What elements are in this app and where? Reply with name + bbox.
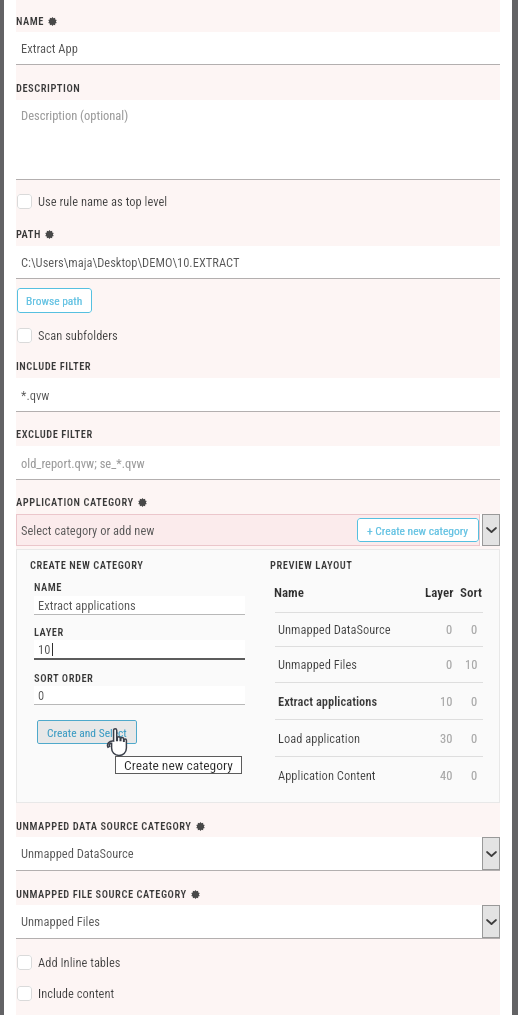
staticText: Extract applications: [278, 694, 423, 709]
staticText: 0: [446, 657, 453, 672]
staticText: 0: [471, 694, 478, 709]
staticText: Unmapped DataSource: [21, 846, 134, 861]
staticText: PATH: [16, 228, 41, 240]
button[interactable]: Open dropdown: [482, 837, 500, 870]
staticText: Load application: [278, 731, 423, 746]
staticText: PREVIEW LAYOUT: [270, 559, 353, 571]
staticText: 30: [440, 731, 453, 746]
staticText: Unmapped Files: [278, 657, 423, 672]
button[interactable]: Browse path: [17, 288, 92, 313]
staticText: + Create new category: [367, 524, 469, 537]
staticText: Select category or add new: [21, 523, 155, 538]
button[interactable]: Include content: [17, 986, 115, 1001]
staticText: Extract applications: [38, 598, 136, 613]
staticText: CREATE NEW CATEGORY: [30, 559, 144, 571]
staticText: Sort: [460, 585, 483, 600]
button[interactable]: Open dropdown: [482, 514, 500, 546]
staticText: Unmapped DataSource: [278, 622, 423, 637]
staticText: 0: [471, 731, 478, 746]
staticText: UNMAPPED DATA SOURCE CATEGORY: [16, 820, 192, 832]
staticText: Application Content: [278, 768, 423, 783]
button[interactable]: Extract applications: [270, 683, 483, 719]
staticText: 40: [440, 768, 453, 783]
staticText: C:\Users\maja\Desktop\DEMO\10.EXTRACT: [21, 255, 240, 270]
staticText: UNMAPPED FILE SOURCE CATEGORY: [16, 888, 187, 900]
staticText: 10: [440, 694, 453, 709]
staticText: INCLUDE FILTER: [16, 360, 92, 372]
button[interactable]: Open dropdown: [482, 905, 500, 938]
staticText: 10: [38, 642, 51, 657]
staticText: EXCLUDE FILTER: [16, 428, 93, 440]
staticText: 0: [471, 622, 478, 637]
staticText: SORT ORDER: [34, 672, 94, 684]
staticText: 0: [38, 688, 45, 703]
staticText: Add Inline tables: [38, 955, 121, 970]
staticText: Scan subfolders: [38, 328, 118, 343]
staticText: Extract App: [21, 41, 78, 56]
button[interactable]: Scan subfolders: [17, 328, 118, 343]
staticText: Name: [274, 585, 423, 600]
button[interactable]: Unmapped Files: [270, 647, 483, 682]
staticText: Description (optional): [21, 108, 129, 123]
button[interactable]: + Create new category: [357, 518, 479, 542]
staticText: Unmapped Files: [21, 914, 101, 929]
staticText: Browse path: [26, 294, 83, 307]
button[interactable]: Load application: [270, 720, 483, 756]
staticText: NAME: [34, 581, 62, 593]
button[interactable]: Application Content: [270, 757, 483, 793]
staticText: Include content: [38, 986, 115, 1001]
staticText: 10: [465, 657, 478, 672]
button[interactable]: Use rule name as top level: [17, 194, 168, 209]
staticText: NAME: [16, 15, 44, 27]
staticText: 0: [446, 622, 453, 637]
staticText: Create and Select: [47, 726, 127, 739]
staticText: Create new category: [124, 757, 233, 773]
button[interactable]: Create and Select: [37, 720, 137, 744]
button[interactable]: Select category or add new: [16, 514, 480, 546]
button[interactable]: Unmapped DataSource: [270, 613, 483, 646]
staticText: LAYER: [34, 626, 64, 638]
staticText: DESCRIPTION: [16, 82, 81, 94]
staticText: old_report.qvw; se_*.qvw: [21, 456, 145, 471]
staticText: *.qvw: [21, 388, 50, 403]
staticText: Layer: [425, 585, 454, 600]
button[interactable]: Add Inline tables: [17, 955, 121, 970]
staticText: Use rule name as top level: [38, 194, 168, 209]
staticText: 0: [471, 768, 478, 783]
staticText: APPLICATION CATEGORY: [16, 496, 134, 508]
